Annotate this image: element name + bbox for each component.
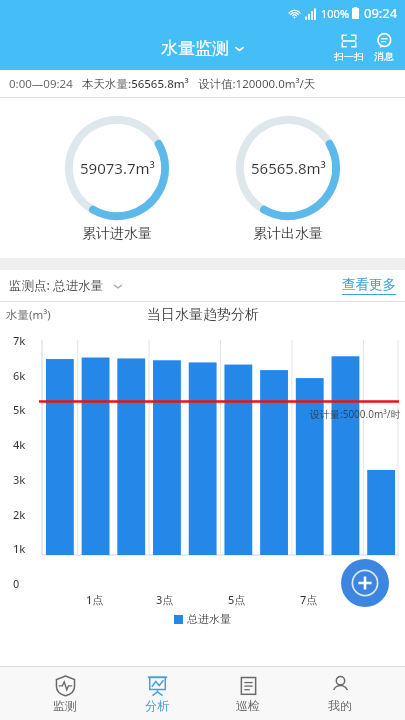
button[interactable]: 监测: [39, 671, 91, 717]
staticText: 扫一扫: [334, 50, 364, 63]
button[interactable]: 我的: [314, 671, 366, 717]
button[interactable]: 查看更多: [342, 273, 396, 298]
staticText: 监测: [53, 698, 77, 713]
button[interactable]: 59073.7m³: [63, 114, 171, 243]
button[interactable]: 扫一扫 Scan: [329, 31, 369, 65]
staticText: 消息: [374, 50, 394, 63]
button[interactable]: 56565.8m³: [234, 114, 342, 243]
button[interactable]: Add: [341, 559, 389, 607]
staticText: 本天水量:56565.8m³: [82, 76, 189, 92]
staticText: 0: [13, 576, 20, 591]
staticText: 7点: [300, 592, 318, 607]
staticText: 设计量:5000.0m³/时: [310, 407, 401, 421]
staticText: 1k: [13, 541, 26, 556]
staticText: 4k: [13, 437, 26, 452]
button[interactable]: 监测点: 总进水量: [9, 273, 123, 298]
staticText: 0:00—09:24: [9, 76, 73, 92]
staticText: 我的: [328, 698, 352, 713]
staticText: 56565.8m³: [251, 158, 326, 178]
staticText: 监测点: 总进水量: [9, 277, 104, 294]
staticText: 当日水量趋势分析: [147, 306, 259, 324]
staticText: 2k: [13, 507, 26, 522]
staticText: 6k: [13, 368, 26, 383]
staticText: 3k: [13, 472, 26, 487]
staticText: 1点: [86, 592, 104, 607]
staticText: 累计进水量: [82, 225, 152, 243]
button[interactable]: 水量监测: [155, 34, 251, 63]
staticText: 分析: [145, 698, 169, 713]
button[interactable]: 消息 Messages: [369, 31, 399, 65]
staticText: 3点: [156, 592, 174, 607]
staticText: 累计出水量: [253, 225, 323, 243]
staticText: 设计值:120000.0m³/天: [198, 76, 316, 92]
staticText: 查看更多: [342, 276, 396, 293]
staticText: 09:24: [364, 4, 398, 22]
staticText: 总进水量: [187, 612, 231, 626]
staticText: 100%: [321, 6, 350, 21]
staticText: 水量监测: [161, 38, 229, 59]
button[interactable]: 分析: [131, 671, 183, 717]
button[interactable]: 巡检: [222, 671, 274, 717]
staticText: 5k: [13, 402, 26, 417]
staticText: 5点: [228, 592, 246, 607]
staticText: 水量(m³): [6, 307, 51, 323]
staticText: 巡检: [236, 698, 260, 713]
staticText: 7k: [13, 333, 26, 348]
staticText: 59073.7m³: [80, 158, 155, 178]
